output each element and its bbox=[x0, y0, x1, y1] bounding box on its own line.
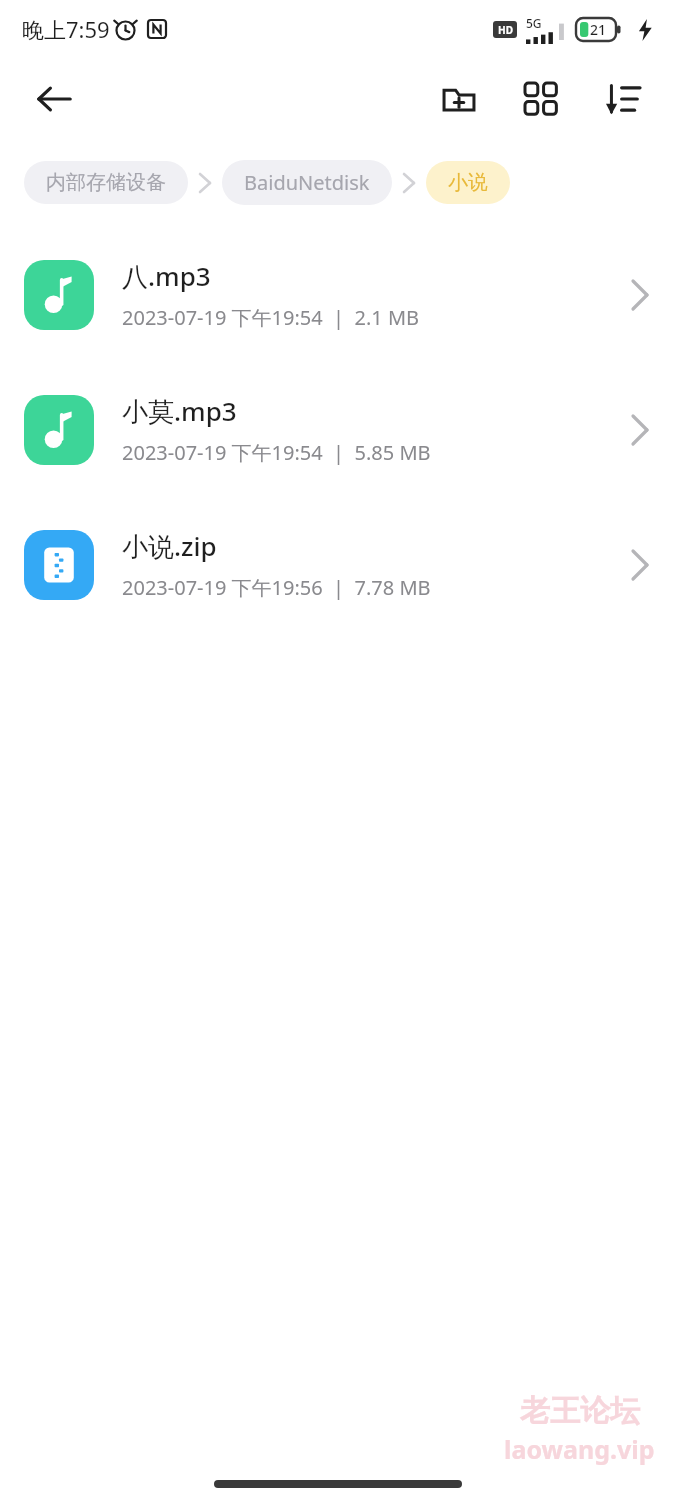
button[interactable]: 小说 bbox=[426, 161, 510, 204]
staticText: 小说.zip bbox=[122, 528, 217, 564]
staticText: 5G bbox=[526, 15, 542, 31]
staticText: 2023-07-19 下午19:54 | 5.85 MB bbox=[122, 439, 431, 466]
button[interactable]: 小说.zip bbox=[0, 497, 675, 632]
staticText: 晚上7:59 bbox=[22, 14, 110, 44]
staticText: BaiduNetdisk bbox=[244, 169, 370, 196]
button[interactable]: 内部存储设备 bbox=[24, 161, 188, 204]
button[interactable]: BaiduNetdisk bbox=[222, 160, 392, 205]
button[interactable]: New folder bbox=[431, 71, 487, 127]
staticText: 21 bbox=[590, 20, 607, 39]
button[interactable]: 八.mp3 bbox=[0, 227, 675, 362]
staticText: 小莫.mp3 bbox=[122, 393, 237, 429]
staticText: 2023-07-19 下午19:56 | 7.78 MB bbox=[122, 574, 431, 601]
button[interactable]: Sort bbox=[595, 71, 651, 127]
staticText: laowang.vip bbox=[504, 1432, 655, 1466]
staticText: 内部存储设备 bbox=[46, 170, 166, 195]
staticText: 2023-07-19 下午19:54 | 2.1 MB bbox=[122, 304, 420, 331]
staticText: HD bbox=[498, 23, 513, 37]
button[interactable]: Back bbox=[28, 73, 80, 125]
staticText: 八.mp3 bbox=[122, 258, 211, 294]
button[interactable]: 小莫.mp3 bbox=[0, 362, 675, 497]
staticText: 老王论坛 bbox=[520, 1392, 640, 1430]
button[interactable]: Grid view bbox=[513, 71, 569, 127]
staticText: 小说 bbox=[448, 170, 488, 195]
